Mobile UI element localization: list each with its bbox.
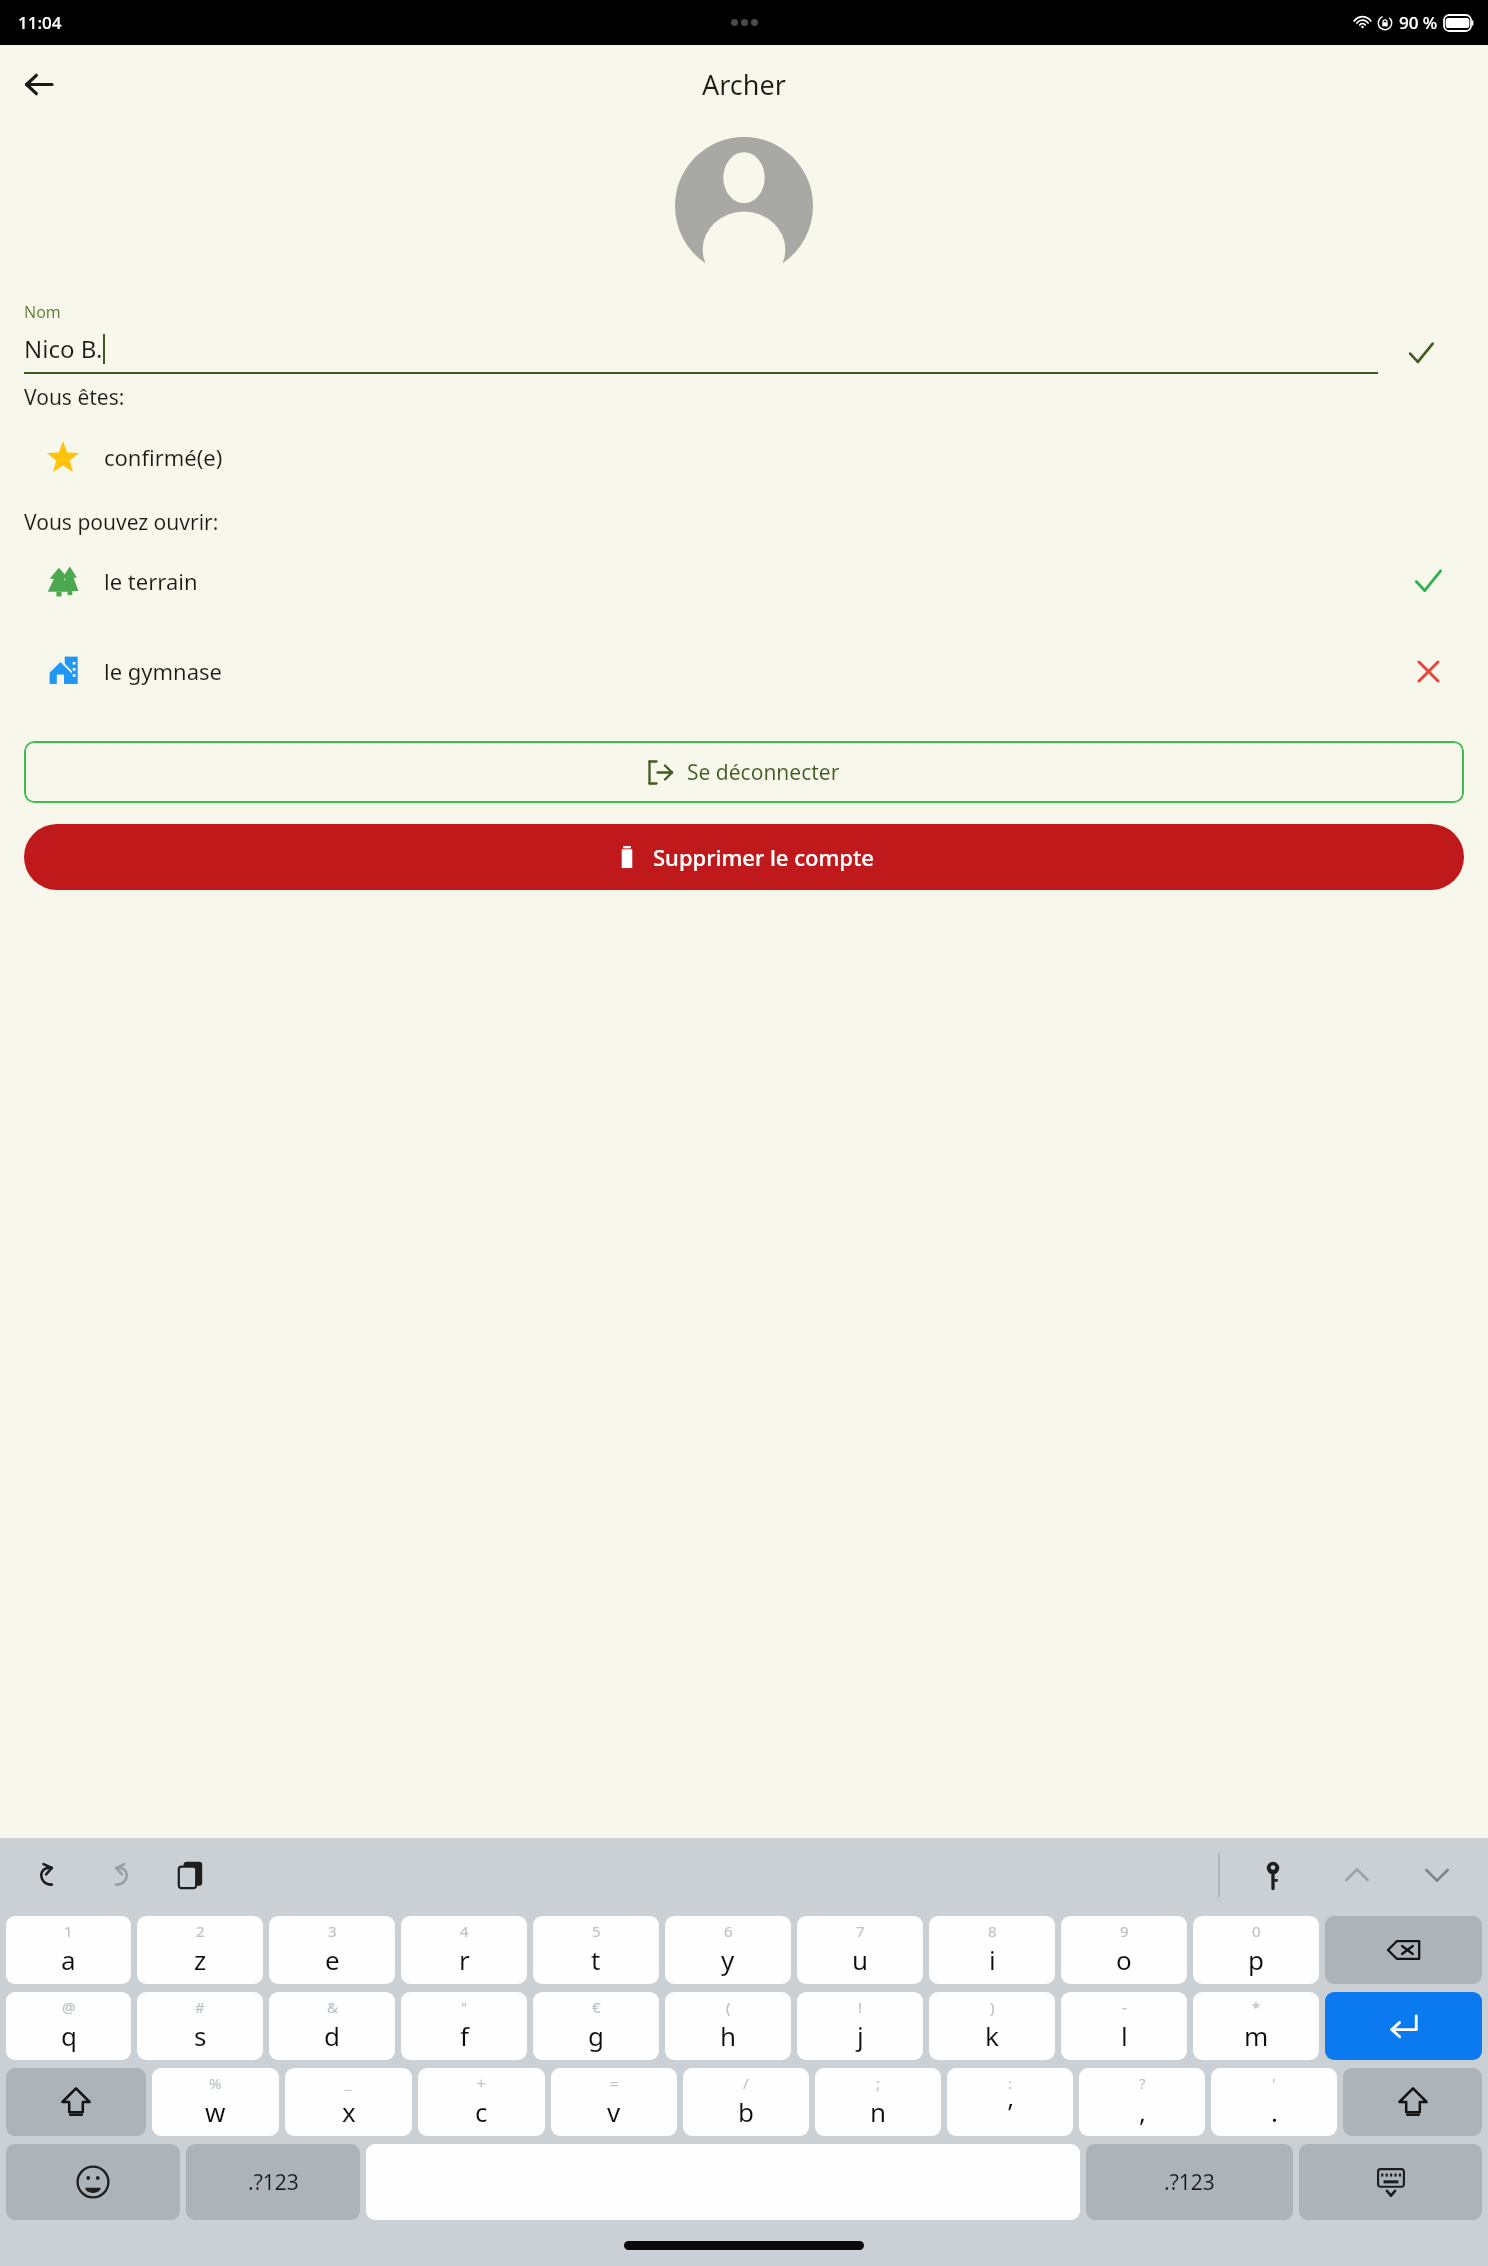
button[interactable]: Entrée [1325,1992,1482,2060]
staticText: o [1116,1942,1132,1977]
staticText: 8 [988,1921,997,1941]
button[interactable]: Autorisé [1392,553,1464,609]
button[interactable]: Se déconnecter [24,741,1464,803]
button[interactable]: Précédent [1330,1848,1384,1902]
staticText: € [592,1997,601,2017]
staticText: f [460,2018,469,2053]
button[interactable]: Retour arrière [1325,1916,1482,1984]
button[interactable]: 4 [401,1916,527,1984]
button[interactable]: le gymnase [24,643,1464,699]
staticText: p [1248,1942,1264,1977]
button[interactable]: Mots de passe [1246,1848,1300,1902]
button[interactable]: Emoji [6,2144,180,2220]
staticText: Vous pouvez ouvrir: [24,508,219,537]
button[interactable]: + [418,2068,545,2136]
staticText: r [459,1942,470,1977]
staticText: le gymnase [104,656,1392,686]
staticText: @ [62,1997,76,2017]
button[interactable]: confirmé(e) [24,428,1464,486]
button[interactable]: .?123 [1086,2144,1293,2220]
button[interactable]: Supprimer le compte [24,824,1464,890]
staticText: . [1271,2094,1278,2129]
staticText: y [721,1942,735,1977]
staticText: v [607,2094,621,2129]
staticText: = [610,2073,619,2093]
button[interactable]: # [137,1992,263,2060]
staticText: Supprimer le compte [653,842,874,872]
staticText: 3 [328,1921,337,1941]
button[interactable]: ' [1211,2068,1337,2136]
button[interactable]: 2 [137,1916,263,1984]
staticText: 0 [1252,1921,1261,1941]
button[interactable]: Non autorisé [1392,643,1464,699]
button[interactable]: ! [797,1992,923,2060]
button[interactable]: le terrain [24,553,1464,609]
button[interactable]: Annuler [22,1849,74,1901]
button[interactable]: / [683,2068,809,2136]
button[interactable]: 3 [269,1916,395,1984]
staticText: ! [858,1997,863,2017]
staticText: 11:04 [18,11,62,34]
staticText: le terrain [104,566,1392,596]
button[interactable]: * [1193,1992,1319,2060]
button[interactable]: Presse-papiers [166,1849,218,1901]
staticText: : [1008,2073,1013,2093]
button[interactable]: € [533,1992,659,2060]
button[interactable]: : [947,2068,1073,2136]
staticText: Nom [24,301,61,323]
staticText: + [477,2073,486,2093]
button[interactable]: ) [929,1992,1055,2060]
button[interactable]: 1 [6,1916,131,1984]
button[interactable]: 0 [1193,1916,1319,1984]
staticText: z [194,1942,207,1977]
staticText: n [870,2094,887,2129]
button[interactable]: ? [1079,2068,1205,2136]
button[interactable]: 8 [929,1916,1055,1984]
button[interactable]: " [401,1992,527,2060]
button[interactable]: _ [285,2068,412,2136]
staticText: 2 [196,1921,205,1941]
button[interactable]: Majuscule [1343,2068,1482,2136]
button[interactable]: @ [6,1992,131,2060]
staticText: ? [1139,2073,1146,2093]
staticText: l [1121,2018,1128,2053]
staticText: 4 [460,1921,469,1941]
staticText: / [743,2073,749,2093]
button[interactable]: Suivant [1410,1848,1464,1902]
staticText: d [324,2018,340,2053]
staticText: 7 [856,1921,865,1941]
button[interactable]: .?123 [186,2144,360,2220]
staticText: 1 [64,1921,73,1941]
staticText: g [588,2018,604,2053]
staticText: x [342,2094,356,2129]
button[interactable]: 6 [665,1916,791,1984]
button[interactable]: ( [665,1992,791,2060]
staticText: % [209,2073,222,2093]
staticText: i [989,1942,996,1977]
staticText: s [194,2018,207,2053]
button[interactable]: Back [10,56,66,112]
button[interactable]: Rétablir [94,1849,146,1901]
staticText: ; [876,2073,881,2093]
staticText: Archer [702,66,786,103]
staticText: Nico B. [24,332,103,365]
button[interactable]: 5 [533,1916,659,1984]
staticText: 5 [592,1921,601,1941]
staticText: b [738,2094,754,2129]
button[interactable]: Majuscule [6,2068,146,2136]
staticText: , [1139,2094,1146,2129]
button[interactable]: 7 [797,1916,923,1984]
button[interactable]: Masquer le clavier [1299,2144,1482,2220]
button[interactable]: Valider le nom [1378,327,1464,379]
button[interactable]: ; [815,2068,941,2136]
staticText: 9 [1120,1921,1129,1941]
button[interactable]: & [269,1992,395,2060]
staticText: confirmé(e) [104,442,223,472]
button[interactable]: % [152,2068,279,2136]
button[interactable]: = [551,2068,677,2136]
staticText: .?123 [1164,2168,1215,2197]
staticText: Se déconnecter [687,758,840,787]
button[interactable]: 9 [1061,1916,1187,1984]
button[interactable]: - [1061,1992,1187,2060]
